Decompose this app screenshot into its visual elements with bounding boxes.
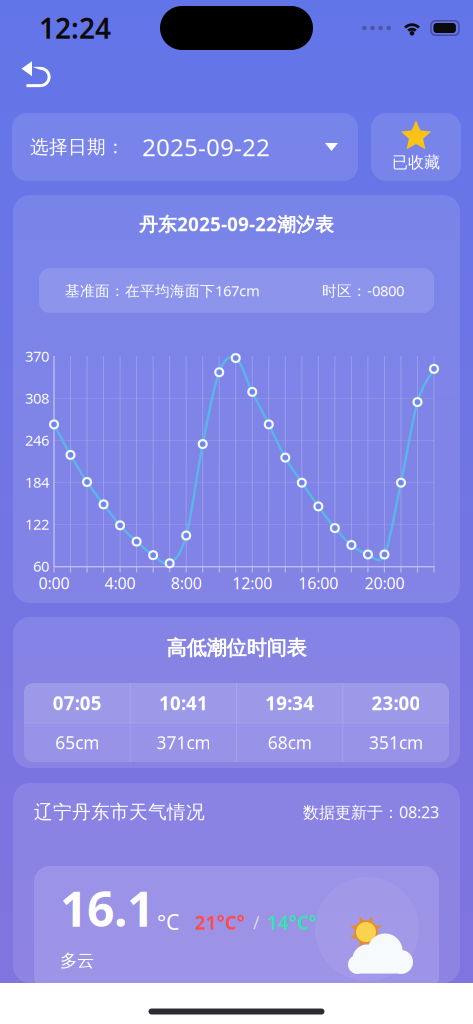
staticText: 12:24 [39, 9, 111, 47]
staticText: / [253, 911, 259, 934]
staticText: 07:05 [53, 691, 102, 715]
button[interactable]: 已收藏 [371, 113, 461, 181]
staticText: 12:00 [232, 572, 272, 594]
staticText: 371cm [156, 731, 210, 754]
staticText: 0:00 [38, 572, 69, 594]
staticText: 60 [33, 556, 49, 576]
staticText: 23:00 [371, 691, 420, 715]
staticText: 19:34 [265, 691, 314, 715]
staticText: 20:00 [364, 572, 404, 594]
staticText: 基准面：在平均海面下167cm [65, 281, 260, 300]
staticText: 2025-09-22 [142, 131, 270, 163]
staticText: 8:00 [171, 572, 202, 594]
staticText: 308 [25, 388, 49, 408]
staticText: 68cm [268, 731, 312, 754]
staticText: 21°C° [195, 910, 245, 935]
staticText: 16:00 [298, 572, 338, 594]
staticText: 选择日期： [30, 135, 125, 158]
button[interactable]: 选择日期： [12, 113, 358, 181]
staticText: 4:00 [105, 572, 136, 594]
staticText: 184 [25, 472, 49, 492]
staticText: 65cm [55, 731, 99, 754]
staticText: 16.1 [60, 876, 154, 940]
staticText: 已收藏 [392, 153, 440, 172]
staticText: 10:41 [159, 691, 208, 715]
staticText: 370 [25, 346, 49, 366]
staticText: 丹东2025-09-22潮汐表 [139, 212, 334, 236]
staticText: 246 [25, 430, 49, 450]
staticText: 高低潮位时间表 [166, 636, 306, 660]
staticText: 辽宁丹东市天气情况 [34, 800, 205, 823]
button[interactable]: Back [0, 56, 72, 100]
staticText: 122 [25, 514, 49, 534]
staticText: 14°C° [267, 910, 317, 935]
staticText: 351cm [369, 731, 423, 754]
staticText: °C [157, 908, 179, 936]
staticText: 多云 [60, 950, 94, 971]
staticText: 数据更新于：08:23 [303, 801, 439, 823]
staticText: 时区：-0800 [322, 281, 404, 300]
